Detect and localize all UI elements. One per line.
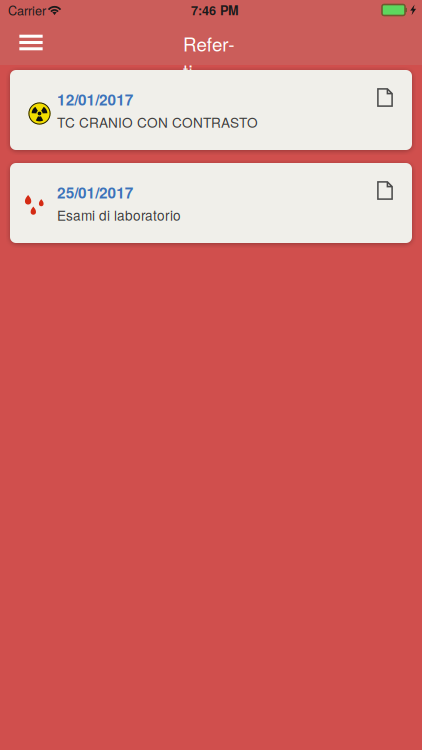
staticText: Carrier — [8, 1, 46, 19]
staticText: 12/01/2017 — [57, 88, 134, 110]
button[interactable]: 25/01/2017 — [10, 163, 412, 243]
staticText: Referti — [183, 30, 234, 84]
button[interactable]: 12/01/2017 — [10, 70, 412, 150]
staticText: 25/01/2017 — [57, 181, 134, 203]
staticText: Esami di laboratorio — [57, 205, 181, 225]
staticText: 7:46 PM — [191, 1, 239, 19]
staticText: TC CRANIO CON CONTRASTO — [57, 112, 258, 132]
button[interactable]: Menu — [9, 20, 53, 64]
